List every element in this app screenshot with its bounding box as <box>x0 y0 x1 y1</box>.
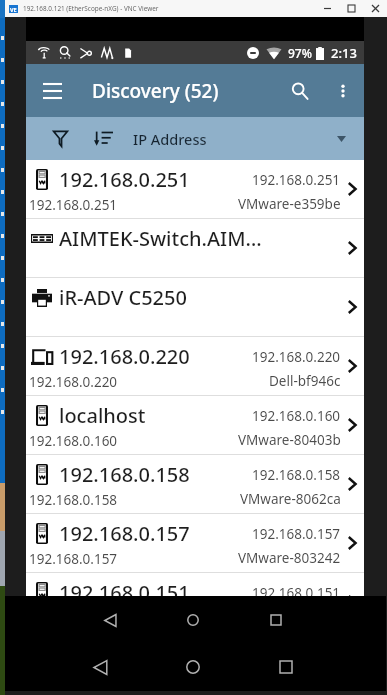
staticText: 192.168.0.151 <box>59 579 190 606</box>
staticText: 192.168.0.157 <box>29 550 118 568</box>
staticText: VMware-e359be <box>238 195 341 213</box>
staticText: 192.168.0.151 <box>29 609 118 627</box>
button[interactable]: IP Address <box>120 117 364 160</box>
staticText: 192.168.0.160 <box>252 407 341 425</box>
staticText: 192.168.0.251 <box>252 171 341 189</box>
button[interactable]: AIMTEK-Switch.AIM… <box>26 219 364 277</box>
staticText: 192.168.0.158 <box>59 461 190 488</box>
button[interactable]: Close <box>363 0 387 17</box>
staticText: VMware-90aabb <box>238 608 341 626</box>
button[interactable]: Back <box>78 645 122 689</box>
button[interactable]: More options <box>323 64 363 117</box>
staticText: Dell-bf946c <box>269 372 341 390</box>
staticText: 192.168.0.157 <box>252 525 341 543</box>
staticText: VMware-8062ca <box>240 490 341 508</box>
staticText: 192.168.0.220 <box>29 373 118 391</box>
button[interactable]: Search <box>277 64 323 117</box>
staticText: 192.168.0.158 <box>252 466 341 484</box>
button[interactable]: Minimize <box>315 0 339 17</box>
staticText: 192.168.0.251 <box>29 196 118 214</box>
staticText: localhost <box>59 402 146 429</box>
button[interactable]: Recent apps <box>254 598 298 642</box>
staticText: VE <box>10 6 17 13</box>
button[interactable]: 192.168.0.251 <box>26 160 364 218</box>
button[interactable]: Back <box>88 598 132 642</box>
staticText: 192.168.0.220 <box>59 343 190 370</box>
button[interactable]: localhost <box>26 396 364 454</box>
button[interactable]: Maximize <box>339 0 363 17</box>
staticText: IP Address <box>133 129 207 149</box>
button[interactable]: Recent apps <box>264 645 308 689</box>
staticText: 2:13 <box>331 44 357 62</box>
button[interactable]: iR-ADV C5250 <box>26 278 364 336</box>
button[interactable]: 192.168.0.220 <box>26 337 364 395</box>
staticText: VMware-803242 <box>238 549 341 567</box>
button[interactable]: Home <box>171 598 215 642</box>
button[interactable]: 192.168.0.157 <box>26 514 364 572</box>
staticText: VMware-80403b <box>238 431 341 449</box>
button[interactable]: 192.168.0.151 <box>26 573 364 631</box>
button[interactable]: 192.168.0.158 <box>26 455 364 513</box>
staticText: Discovery (52) <box>92 78 219 104</box>
staticText: 192.168.0.121 (EtherScope-nXG) - VNC Vie… <box>23 4 159 13</box>
button[interactable]: Open navigation menu <box>26 64 78 117</box>
staticText: iR-ADV C5250 <box>59 284 187 311</box>
staticText: 192.168.0.220 <box>252 348 341 366</box>
button[interactable]: Home <box>171 645 215 689</box>
button[interactable]: Filter <box>43 117 78 160</box>
staticText: 192.168.0.157 <box>59 520 190 547</box>
staticText: 192.168.0.251 <box>59 166 190 193</box>
button[interactable]: Sort order <box>87 117 120 160</box>
staticText: AIMTEK-Switch.AIM… <box>59 225 262 252</box>
staticText: 192.168.0.158 <box>29 491 118 509</box>
staticText: 192.168.0.151 <box>252 584 341 602</box>
staticText: 192.168.0.160 <box>29 432 118 450</box>
staticText: 97% <box>288 45 312 61</box>
